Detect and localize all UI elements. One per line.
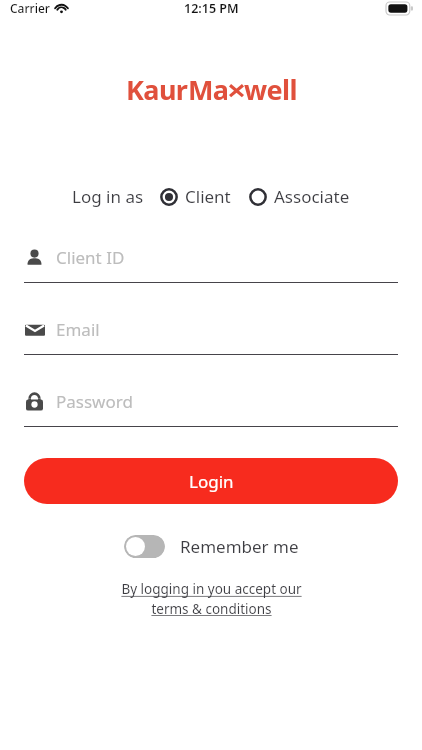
button[interactable]: By logging in you accept our terms & con… bbox=[60, 580, 362, 618]
staticText: Password bbox=[56, 390, 133, 413]
staticText: Client bbox=[185, 185, 231, 208]
staticText: Email bbox=[56, 318, 100, 341]
staticText: Carrier bbox=[10, 0, 50, 16]
staticText: Remember me bbox=[180, 535, 299, 558]
button[interactable]: Login bbox=[24, 458, 398, 504]
button[interactable]: Associate bbox=[249, 183, 350, 210]
staticText: 12:15 PM bbox=[184, 0, 239, 17]
button[interactable]: Client ID bbox=[24, 243, 398, 283]
staticText: Ma bbox=[188, 71, 229, 108]
staticText: By logging in you accept our terms & con… bbox=[121, 580, 302, 618]
staticText: Login bbox=[189, 470, 234, 493]
button[interactable]: Remember me toggle bbox=[124, 535, 165, 558]
staticText: Client ID bbox=[56, 246, 125, 269]
staticText: Associate bbox=[274, 185, 350, 208]
staticText: Log in as bbox=[72, 185, 144, 208]
button[interactable]: Password bbox=[24, 387, 398, 427]
button[interactable]: Client bbox=[160, 183, 231, 210]
staticText: Kaur bbox=[126, 71, 188, 108]
staticText: well bbox=[244, 71, 297, 108]
button[interactable]: Email bbox=[24, 315, 398, 355]
